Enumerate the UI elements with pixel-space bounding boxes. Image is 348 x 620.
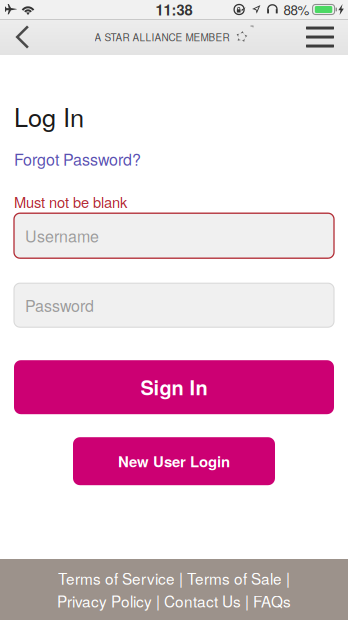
button[interactable]: New User Login (73, 437, 275, 485)
staticText: 11:38 (155, 0, 192, 20)
button[interactable]: Password (14, 283, 334, 327)
staticText: | (241, 590, 253, 612)
staticText: FAQs (253, 590, 291, 612)
staticText: Terms of Service (58, 567, 175, 589)
staticText: Contact Us (164, 590, 241, 612)
button[interactable]: Username (14, 213, 334, 258)
staticText: Forgot Password? (14, 147, 141, 170)
button[interactable]: FAQs (253, 590, 291, 612)
staticText: | (152, 590, 164, 612)
button[interactable]: Terms of Service (58, 567, 175, 589)
staticText: Log In (14, 98, 84, 134)
button[interactable]: Privacy Policy (57, 590, 152, 612)
staticText: New User Login (118, 450, 230, 472)
staticText: Username (25, 224, 99, 247)
button[interactable]: Menu (290, 19, 348, 55)
button[interactable]: Terms of Sale (187, 567, 282, 589)
staticText: Sign In (140, 373, 207, 401)
button[interactable]: Forgot Password? (14, 147, 141, 170)
staticText: Privacy Policy (57, 590, 152, 612)
staticText: 88% (284, 0, 310, 19)
staticText: Terms of Sale (187, 567, 282, 589)
staticText: | (282, 567, 290, 589)
button[interactable]: Contact Us (164, 590, 241, 612)
staticText: | (175, 567, 187, 589)
staticText: Password (25, 294, 94, 317)
button[interactable]: Back (0, 19, 46, 55)
staticText: Must not be blank (14, 191, 127, 212)
staticText: A STAR ALLIANCE MEMBER (94, 30, 229, 44)
button[interactable]: Sign In (14, 360, 334, 414)
